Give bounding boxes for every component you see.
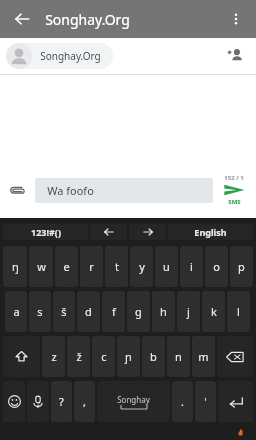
staticText: . bbox=[181, 394, 184, 409]
button[interactable]: k bbox=[202, 291, 225, 332]
staticText: ɲ bbox=[125, 349, 132, 364]
staticText: k bbox=[211, 304, 217, 319]
staticText: u bbox=[163, 259, 170, 274]
button[interactable]: Emoji bbox=[3, 381, 25, 422]
staticText: š bbox=[61, 304, 67, 319]
staticText: t bbox=[115, 259, 119, 274]
button[interactable]: Enter bbox=[218, 381, 253, 422]
button[interactable]: a bbox=[5, 291, 27, 332]
staticText: y bbox=[139, 259, 145, 274]
staticText: Songhay bbox=[117, 394, 150, 405]
button[interactable]: Space bbox=[97, 381, 170, 422]
staticText: j bbox=[187, 304, 190, 319]
button[interactable]: j bbox=[177, 291, 200, 332]
button[interactable]: m bbox=[192, 336, 215, 377]
button[interactable]: l bbox=[227, 291, 250, 332]
staticText: d bbox=[85, 304, 92, 319]
button[interactable]: w bbox=[29, 246, 53, 287]
button[interactable]: More options bbox=[222, 5, 250, 33]
button[interactable]: ɲ bbox=[117, 336, 140, 377]
button[interactable]: Songhay.Org bbox=[6, 43, 113, 69]
staticText: w bbox=[37, 259, 46, 274]
staticText: f bbox=[112, 304, 116, 319]
staticText: e bbox=[63, 259, 70, 274]
staticText: ŋ bbox=[12, 259, 19, 274]
button[interactable]: Shift bbox=[3, 336, 40, 377]
staticText: 123!#() bbox=[31, 226, 61, 238]
staticText: a bbox=[13, 304, 20, 319]
button[interactable]: r bbox=[80, 246, 103, 287]
button[interactable]: g bbox=[127, 291, 150, 332]
staticText: ? bbox=[59, 394, 64, 409]
button[interactable]: Voice input bbox=[27, 381, 49, 422]
button[interactable]: u bbox=[155, 246, 178, 287]
staticText: ' bbox=[204, 394, 207, 409]
staticText: Wa foofo bbox=[47, 183, 94, 198]
staticText: ž bbox=[76, 349, 82, 364]
staticText: SMS bbox=[228, 198, 241, 206]
button[interactable]: Back bbox=[8, 5, 36, 33]
button[interactable]: Backspace bbox=[217, 336, 253, 377]
staticText: l bbox=[237, 304, 240, 319]
button[interactable]: y bbox=[130, 246, 153, 287]
button[interactable]: , bbox=[74, 381, 95, 422]
staticText: , bbox=[83, 394, 86, 409]
button[interactable]: Add person bbox=[222, 43, 248, 69]
staticText: n bbox=[175, 349, 182, 364]
button[interactable]: n bbox=[167, 336, 190, 377]
button[interactable]: ' bbox=[195, 381, 216, 422]
button[interactable]: š bbox=[53, 291, 75, 332]
button[interactable]: Wa foofo bbox=[35, 178, 213, 203]
staticText: English bbox=[194, 226, 227, 238]
staticText: o bbox=[213, 259, 220, 274]
staticText: r bbox=[89, 259, 94, 274]
button[interactable]: h bbox=[152, 291, 175, 332]
button[interactable]: f bbox=[102, 291, 125, 332]
button[interactable]: e bbox=[55, 246, 78, 287]
button[interactable]: b bbox=[142, 336, 165, 377]
button[interactable]: ž bbox=[67, 336, 90, 377]
button[interactable]: ? bbox=[51, 381, 72, 422]
button[interactable]: Left bbox=[90, 224, 127, 240]
button[interactable]: o bbox=[205, 246, 228, 287]
button[interactable]: s bbox=[29, 291, 51, 332]
button[interactable]: c bbox=[92, 336, 115, 377]
button[interactable]: p bbox=[230, 246, 253, 287]
button[interactable]: . bbox=[172, 381, 193, 422]
button[interactable]: 123!#() bbox=[3, 224, 88, 240]
button[interactable]: d bbox=[77, 291, 100, 332]
staticText: p bbox=[238, 259, 245, 274]
button[interactable]: t bbox=[105, 246, 128, 287]
staticText: i bbox=[190, 259, 193, 274]
staticText: s bbox=[37, 304, 43, 319]
staticText: m bbox=[198, 349, 209, 364]
staticText: c bbox=[101, 349, 107, 364]
staticText: h bbox=[160, 304, 167, 319]
button[interactable]: Right bbox=[129, 224, 166, 240]
staticText: Songhay.Org bbox=[40, 49, 101, 63]
button[interactable]: z bbox=[42, 336, 65, 377]
button[interactable]: ŋ bbox=[3, 246, 27, 287]
button[interactable]: English bbox=[168, 224, 253, 240]
staticText: z bbox=[51, 349, 57, 364]
staticText: b bbox=[150, 349, 157, 364]
button[interactable]: i bbox=[180, 246, 203, 287]
button[interactable]: Attach bbox=[3, 176, 31, 204]
staticText: 152 / 1 bbox=[224, 174, 244, 182]
button[interactable]: Send SMS bbox=[216, 174, 252, 206]
staticText: Songhay.Org bbox=[45, 10, 130, 29]
staticText: g bbox=[135, 304, 142, 319]
